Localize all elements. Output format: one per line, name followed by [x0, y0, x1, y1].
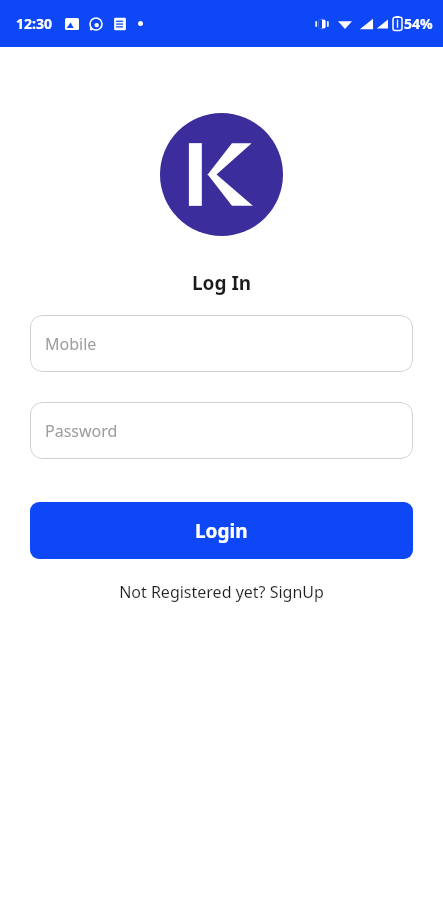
- button[interactable]: Not Registered yet? SignUp: [0, 577, 443, 607]
- staticText: 12:30: [16, 14, 52, 33]
- button[interactable]: Mobile: [30, 315, 413, 372]
- staticText: Not Registered yet? SignUp: [119, 581, 324, 603]
- staticText: Log In: [192, 270, 252, 296]
- staticText: 54%: [404, 14, 433, 33]
- staticText: Login: [195, 518, 248, 544]
- button[interactable]: Password: [30, 402, 413, 459]
- staticText: Mobile: [45, 333, 97, 355]
- button[interactable]: Login: [30, 502, 413, 559]
- staticText: Password: [45, 420, 118, 442]
